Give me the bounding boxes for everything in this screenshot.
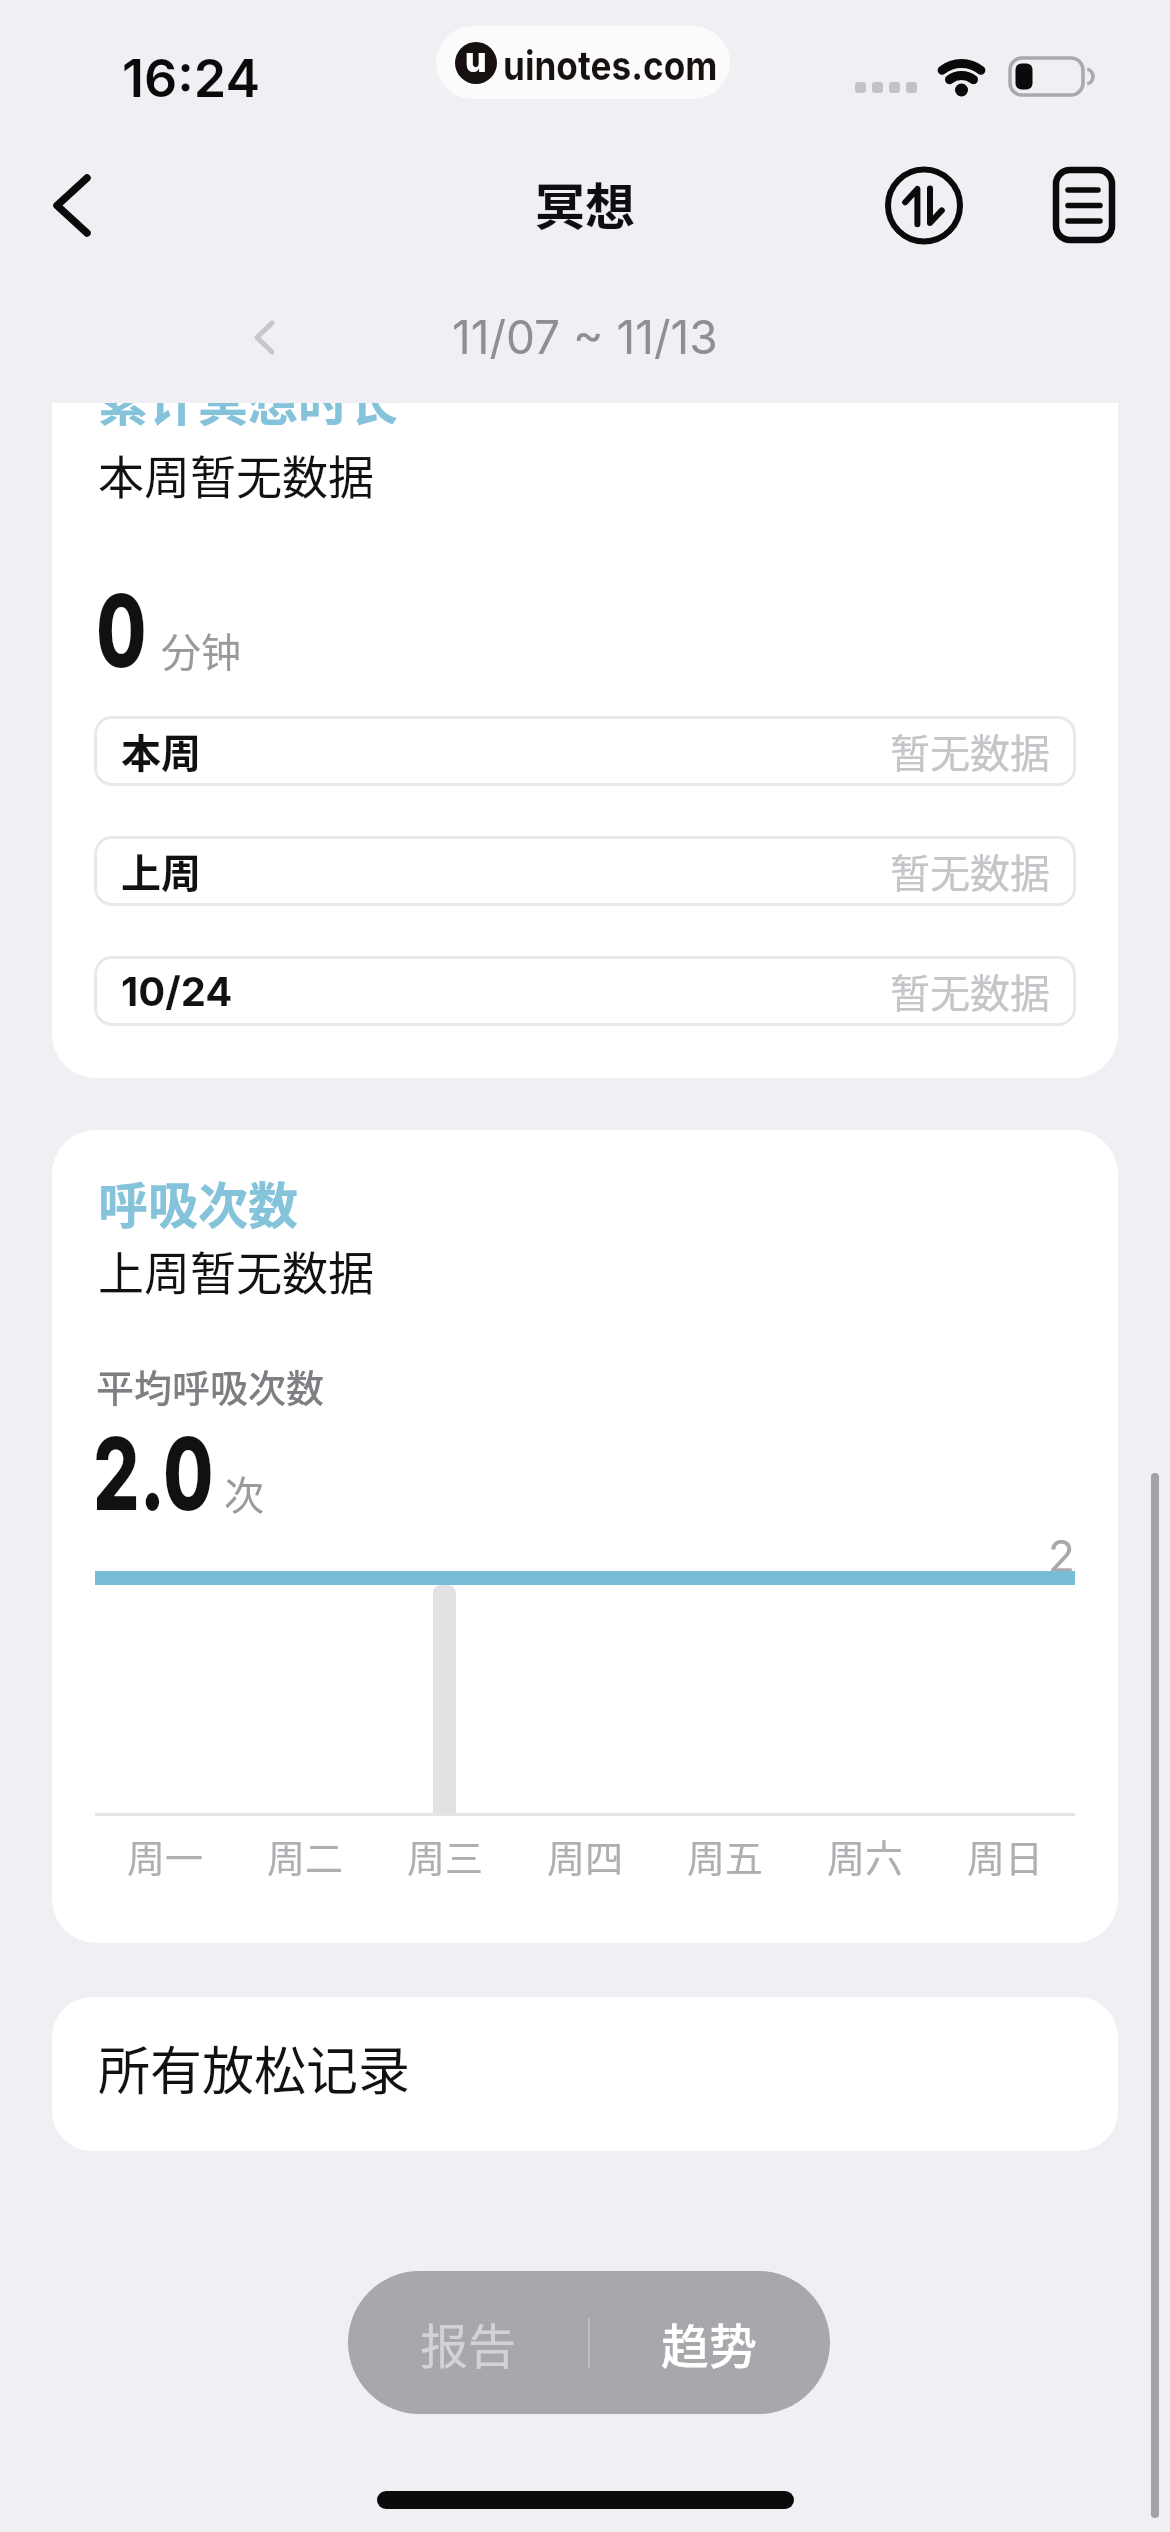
button[interactable]: 所有放松记录: [52, 1997, 1118, 2151]
button[interactable]: [240, 305, 290, 370]
staticText: 累计冥想时长: [98, 403, 398, 435]
staticText: 本周: [121, 722, 201, 780]
staticText: 呼吸次数: [98, 1166, 298, 1238]
staticText: 2.0: [93, 1413, 214, 1534]
staticText: 0: [96, 570, 147, 691]
staticText: 周日: [967, 1828, 1044, 1883]
button[interactable]: 上周: [94, 836, 1076, 906]
staticText: 次: [224, 1464, 264, 1522]
staticText: 16:24: [122, 47, 261, 110]
staticText: 周六: [827, 1828, 904, 1883]
staticText: 报告: [420, 2308, 517, 2378]
staticText: 10/24: [121, 967, 233, 1015]
staticText: 暂无数据: [890, 842, 1050, 900]
staticText: u: [465, 42, 487, 80]
staticText: 周三: [407, 1828, 484, 1883]
staticText: 所有放松记录: [98, 2030, 411, 2105]
staticText: 趋势: [661, 2308, 758, 2378]
staticText: 冥想: [535, 167, 635, 239]
button[interactable]: [35, 160, 105, 250]
button[interactable]: [884, 165, 964, 245]
button[interactable]: 趋势: [589, 2271, 830, 2414]
staticText: 本周暂无数据: [98, 441, 374, 508]
staticText: 平均呼吸次数: [96, 1358, 325, 1413]
staticText: 上周暂无数据: [98, 1237, 374, 1304]
staticText: uinotes.com: [503, 41, 718, 89]
button[interactable]: 10/24: [94, 956, 1076, 1026]
staticText: 周一: [127, 1828, 204, 1883]
staticText: 暂无数据: [890, 722, 1050, 780]
staticText: 分钟: [161, 621, 241, 679]
button[interactable]: [1046, 160, 1126, 250]
button[interactable]: 本周: [94, 716, 1076, 786]
staticText: 2: [1048, 1529, 1075, 1582]
staticText: 11/07 ~ 11/13: [452, 309, 718, 365]
staticText: 暂无数据: [890, 962, 1050, 1020]
staticText: 周二: [267, 1828, 344, 1883]
button[interactable]: 报告: [348, 2271, 589, 2414]
staticText: 周四: [547, 1828, 624, 1883]
staticText: 周五: [687, 1828, 764, 1883]
staticText: 上周: [121, 842, 201, 900]
